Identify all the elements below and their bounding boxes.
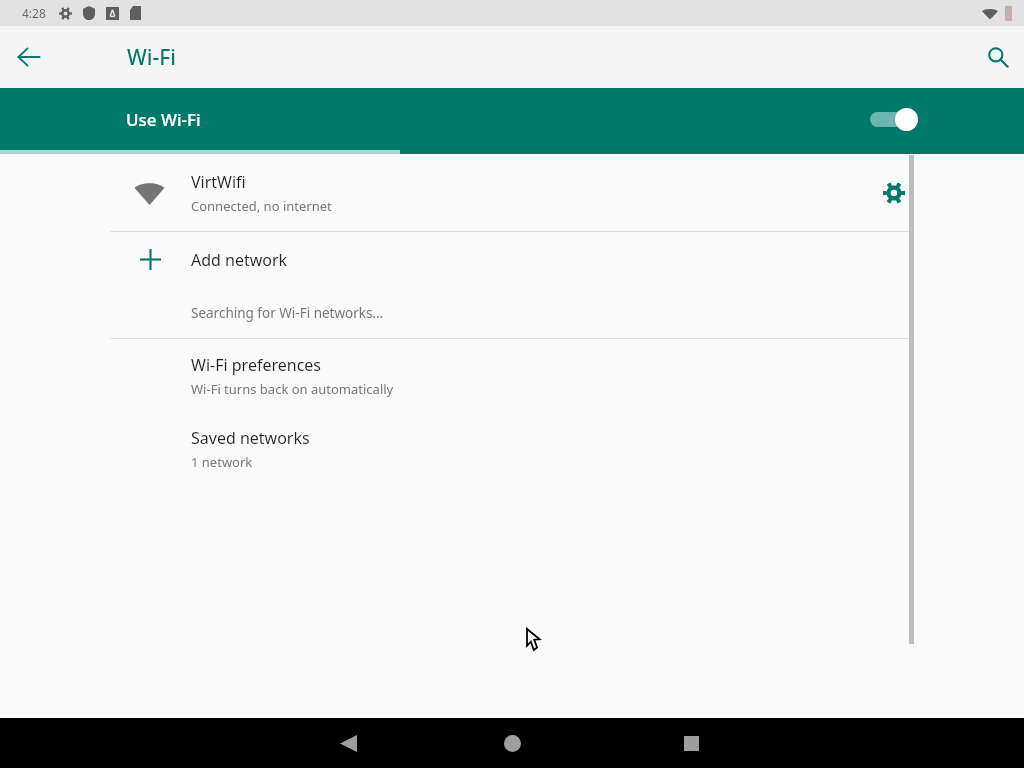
staticText: Connected, no internet xyxy=(191,197,332,215)
staticText: Use Wi-Fi xyxy=(126,108,201,131)
button[interactable]: Network settings xyxy=(872,171,916,215)
button[interactable]: VirtWifi xyxy=(0,154,1024,231)
button[interactable]: Wi-Fi preferences xyxy=(0,339,1024,412)
staticText: Wi-Fi turns back on automatically xyxy=(191,380,394,398)
button[interactable]: Recents xyxy=(668,720,714,766)
staticText: Saved networks xyxy=(191,427,310,449)
staticText: Searching for Wi-Fi networks… xyxy=(191,304,384,322)
button[interactable]: Add network xyxy=(0,232,1024,287)
staticText: 4:28 xyxy=(22,5,46,21)
staticText: 1 network xyxy=(191,453,253,471)
staticText: VirtWifi xyxy=(191,171,246,193)
button[interactable]: Search xyxy=(975,34,1021,80)
button[interactable]: Use Wi-Fi xyxy=(0,88,1024,150)
staticText: Add network xyxy=(191,249,288,271)
staticText: Wi-Fi preferences xyxy=(191,354,322,376)
button[interactable]: Back xyxy=(325,720,371,766)
staticText: Wi-Fi xyxy=(127,43,176,72)
button[interactable]: Home xyxy=(489,720,535,766)
button[interactable]: Back xyxy=(6,34,52,80)
button[interactable]: Saved networks xyxy=(0,412,1024,485)
